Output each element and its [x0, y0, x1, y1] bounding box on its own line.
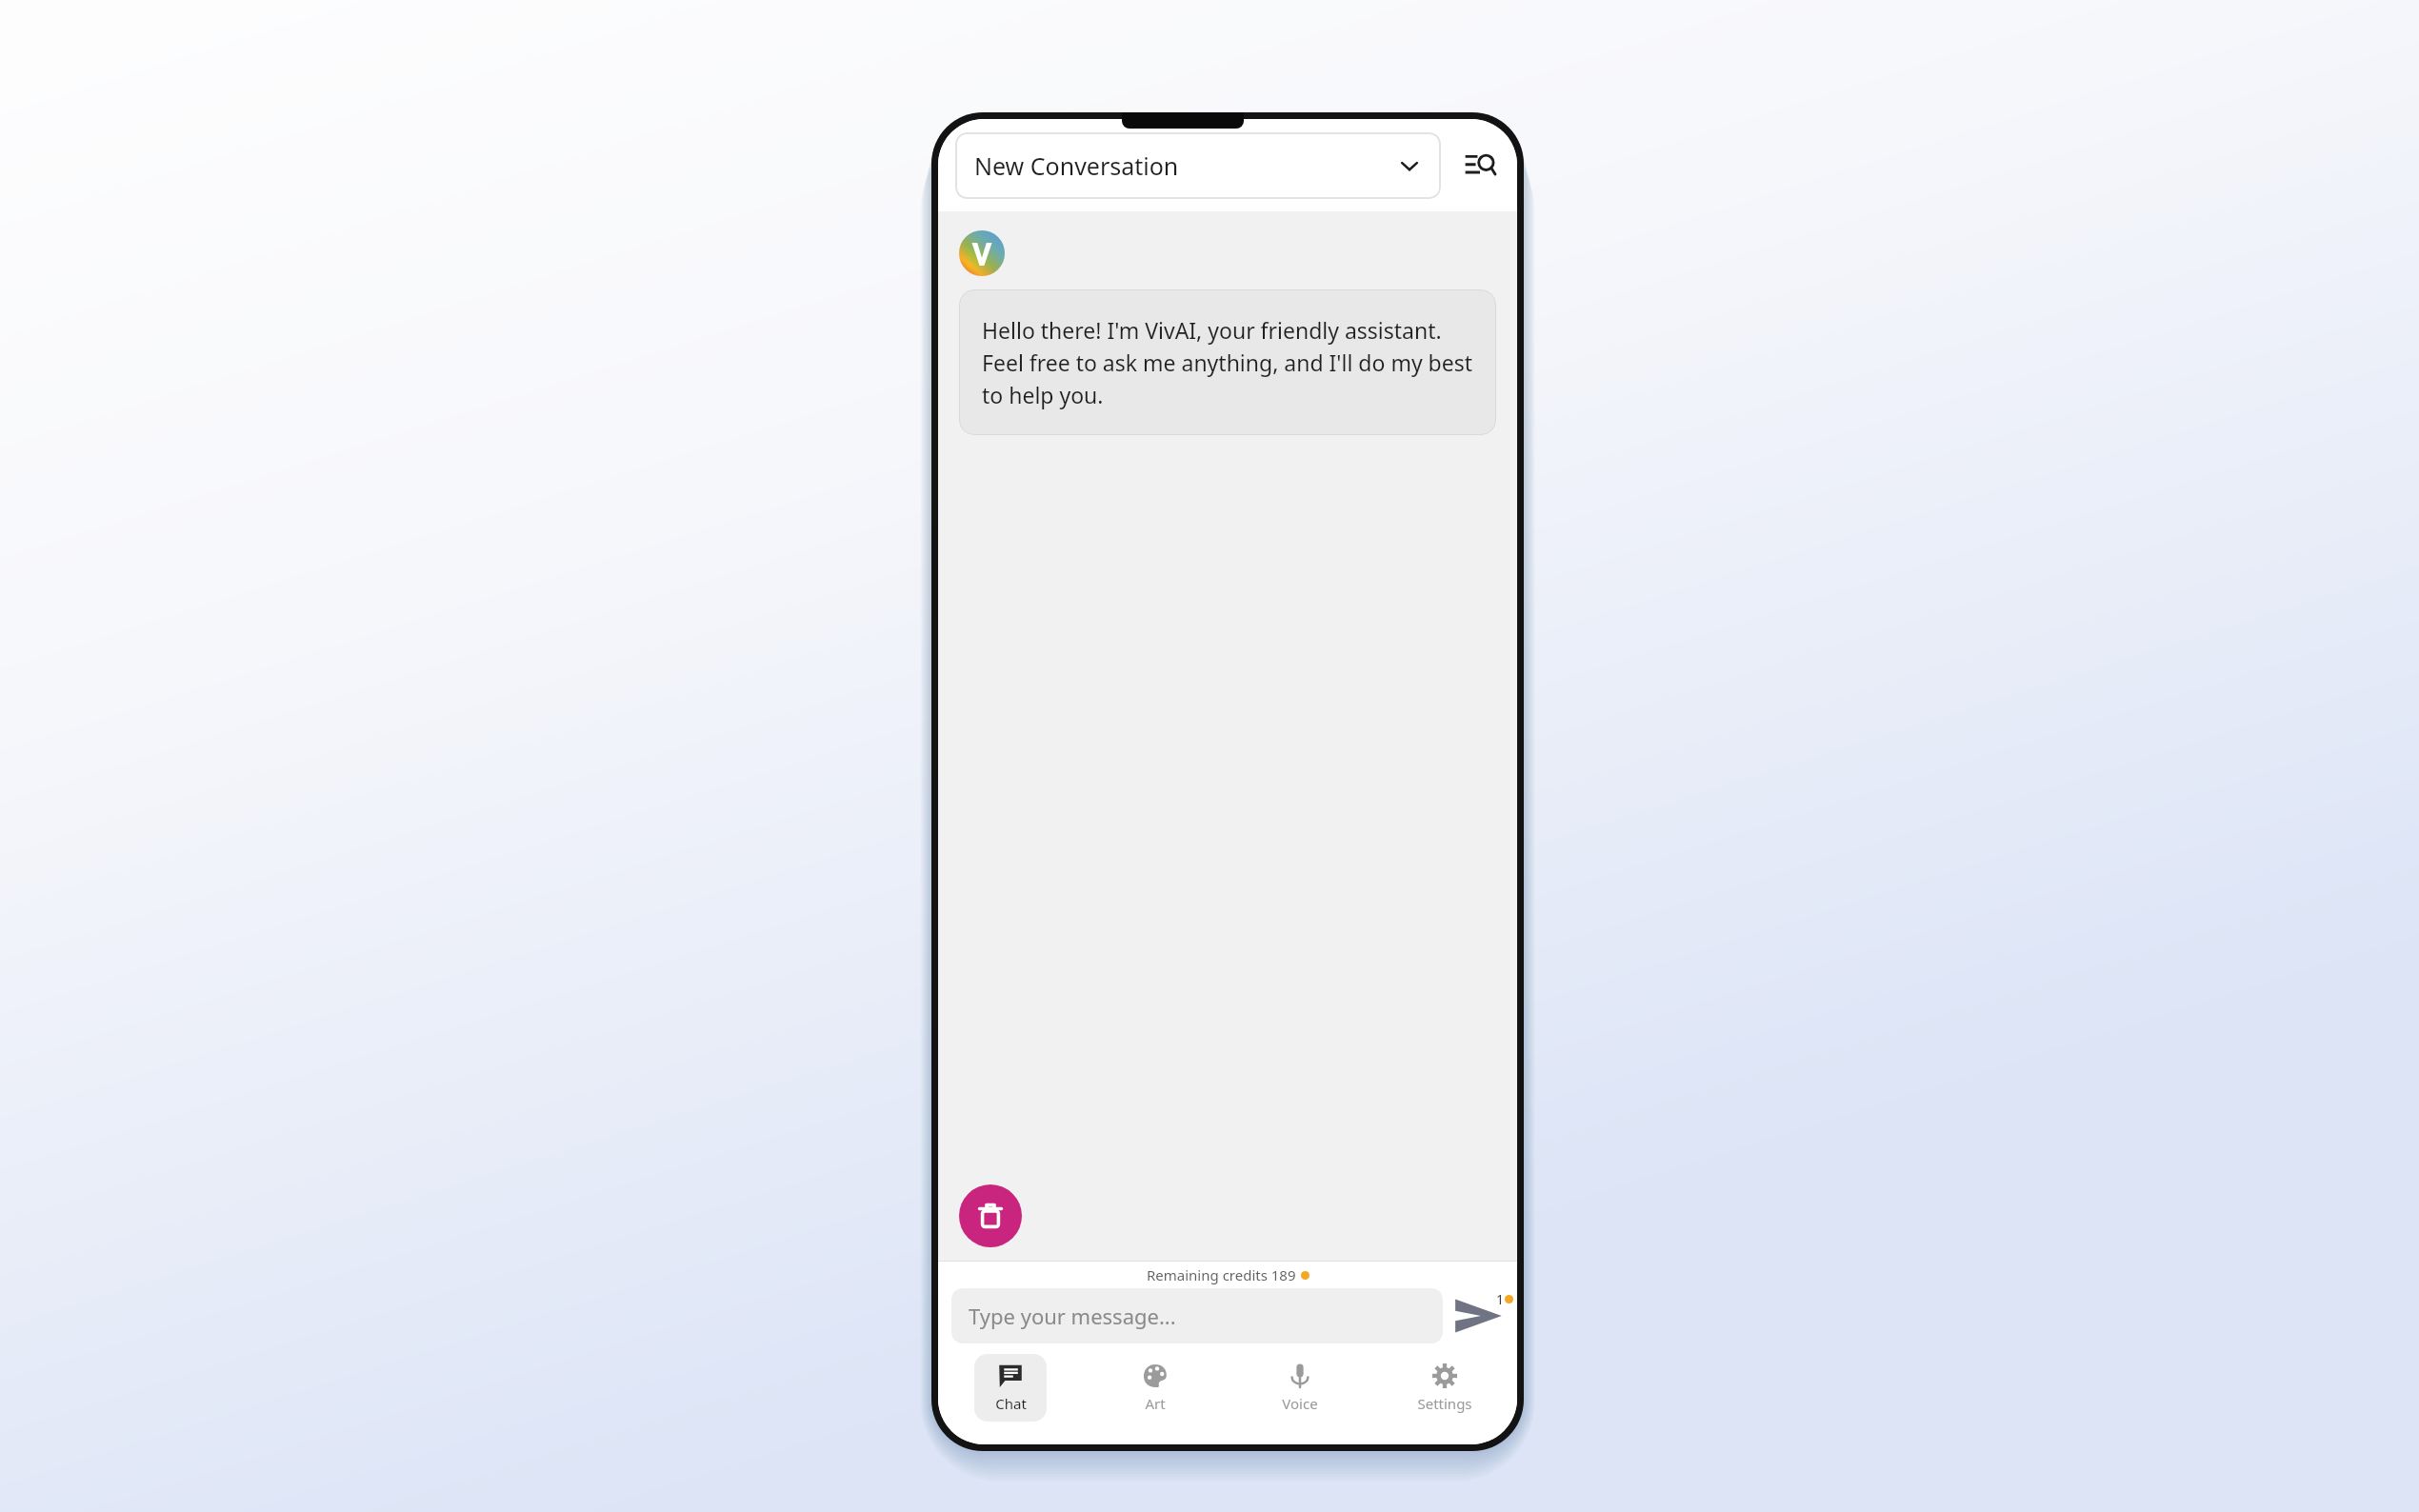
staticText: Remaining credits 189 — [1147, 1265, 1296, 1284]
staticText: 1 — [1496, 1290, 1505, 1308]
button[interactable]: Send message — [1450, 1288, 1511, 1343]
staticText: Art — [1145, 1394, 1166, 1413]
staticText: Hello there! I'm VivAI, your friendly as… — [982, 315, 1473, 409]
staticText: Type your message... — [969, 1302, 1176, 1330]
button[interactable]: Art — [1119, 1354, 1191, 1422]
button[interactable]: Chat — [974, 1354, 1047, 1422]
button[interactable]: Settings — [1409, 1354, 1481, 1422]
button[interactable]: New Conversation — [955, 132, 1441, 199]
button[interactable]: Type your message... — [951, 1288, 1443, 1343]
button[interactable]: Clear conversation — [959, 1184, 1022, 1247]
staticText: Settings — [1417, 1394, 1472, 1413]
staticText: Chat — [995, 1394, 1027, 1413]
button[interactable]: Search conversations — [1452, 138, 1508, 193]
button[interactable]: Voice — [1264, 1354, 1336, 1422]
button[interactable]: Hello there! I'm VivAI, your friendly as… — [959, 289, 1496, 435]
staticText: New Conversation — [974, 149, 1179, 182]
staticText: Voice — [1282, 1394, 1318, 1413]
